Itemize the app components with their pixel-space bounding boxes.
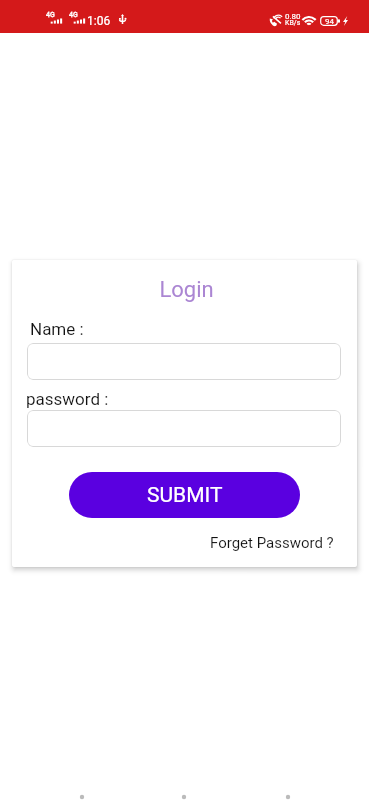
button[interactable]: SUBMIT (69, 472, 300, 518)
staticText: Login (14, 277, 357, 303)
staticText: Name : (30, 319, 84, 339)
staticText: 1:06 (87, 14, 111, 28)
button[interactable]: Forget Password ? (210, 534, 334, 552)
staticText: 4G (69, 11, 78, 19)
staticText: 0.80 (285, 12, 301, 21)
button[interactable] (27, 343, 341, 380)
staticText: SUBMIT (147, 483, 223, 508)
button[interactable] (27, 410, 341, 447)
staticText: KB/s (285, 19, 301, 27)
staticText: 94 (325, 17, 334, 26)
staticText: password : (26, 389, 109, 409)
staticText: 4G (46, 11, 55, 19)
